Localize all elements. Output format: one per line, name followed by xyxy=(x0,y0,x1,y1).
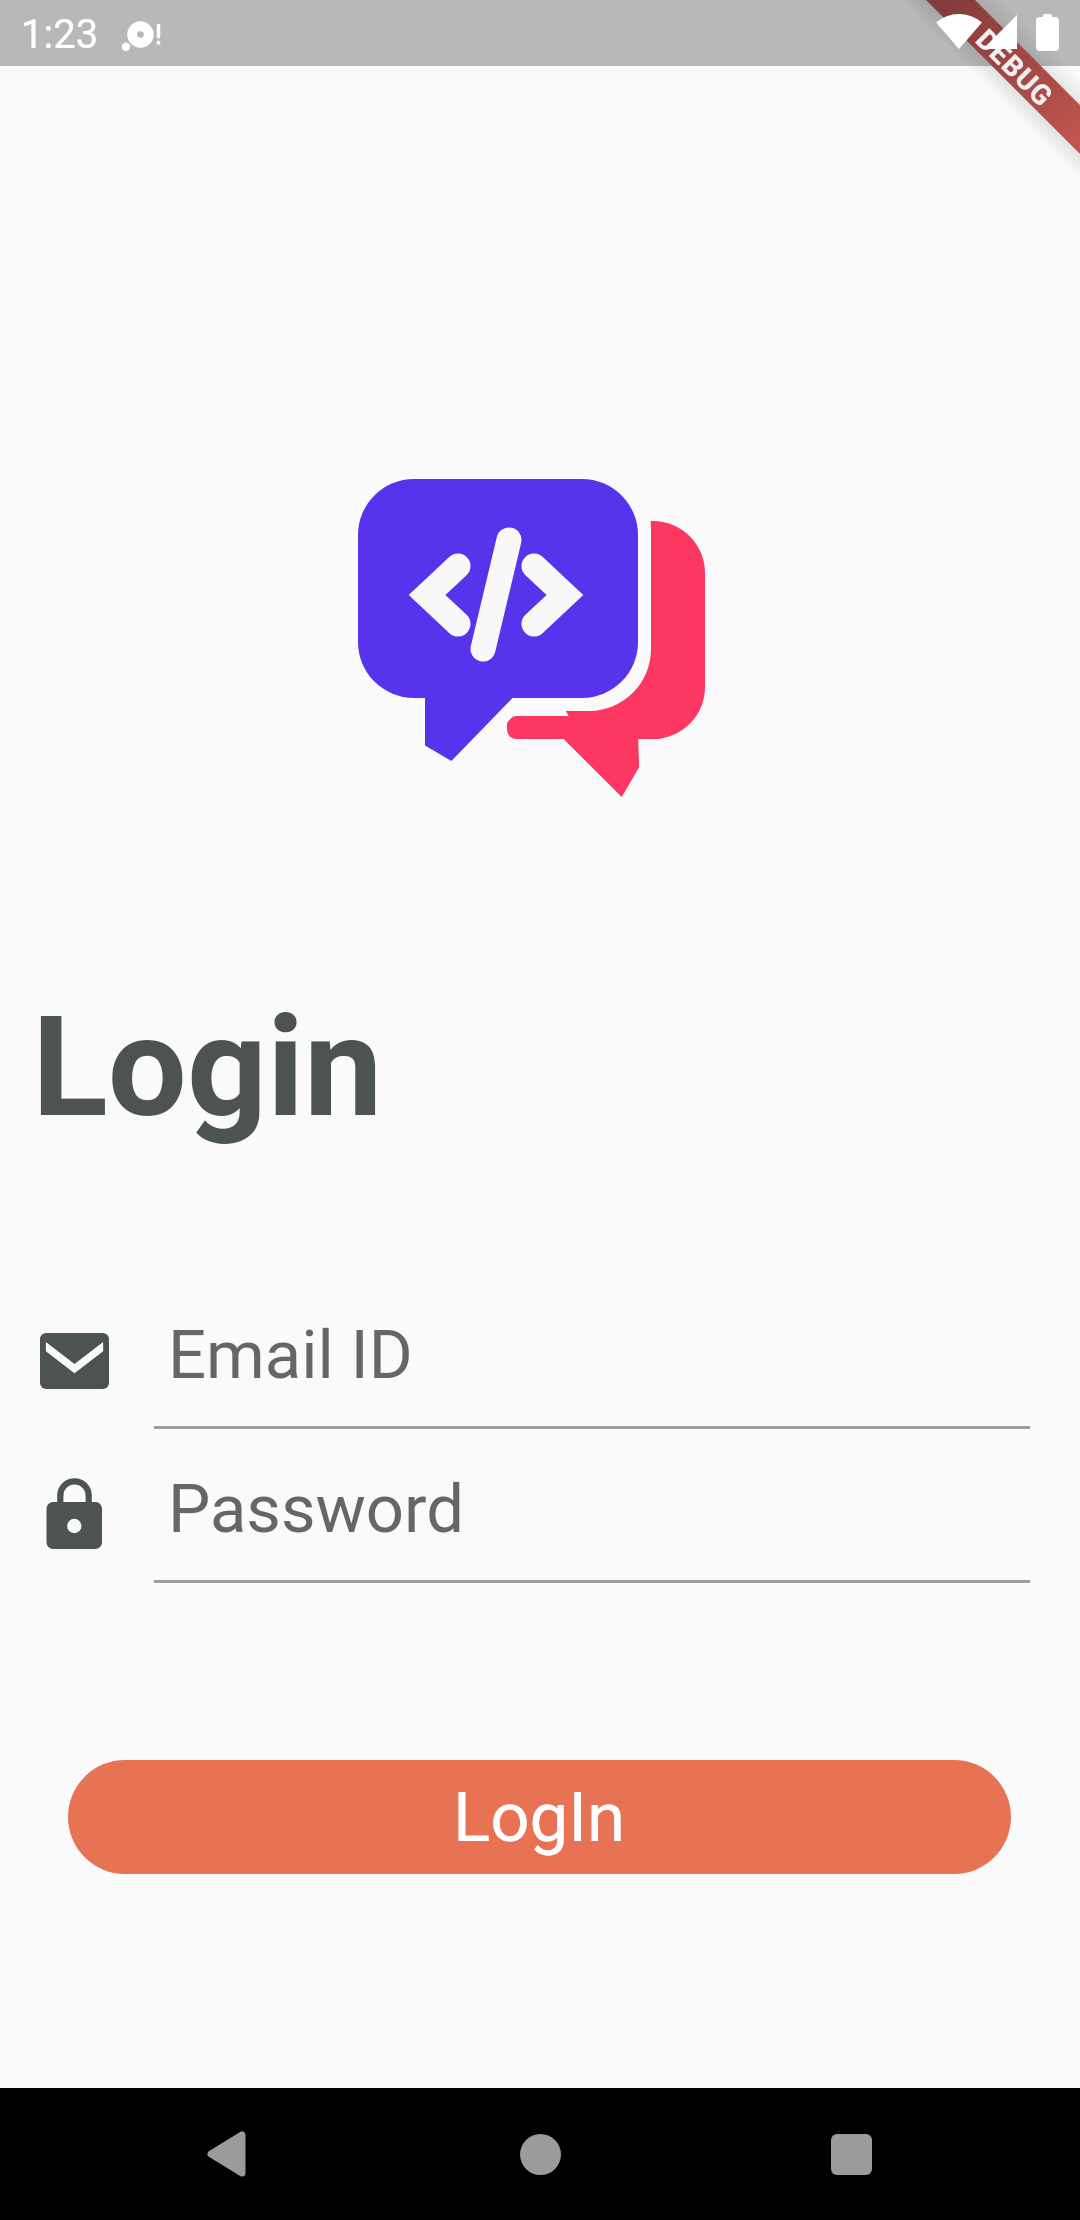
button[interactable]: Home xyxy=(494,2088,586,2220)
staticText: LogIn xyxy=(453,1777,626,1858)
staticText: DEBUG xyxy=(969,23,1060,114)
staticText: Password xyxy=(168,1470,464,1549)
button[interactable]: Email ID xyxy=(30,1300,1040,1430)
staticText: Email ID xyxy=(168,1316,413,1395)
staticText: Login xyxy=(32,985,383,1149)
button[interactable]: Password xyxy=(30,1455,1040,1585)
button[interactable]: Back xyxy=(180,2088,272,2220)
button[interactable]: Recent apps xyxy=(805,2088,897,2220)
button[interactable]: LogIn xyxy=(68,1760,1011,1874)
staticText: 1:23 xyxy=(21,11,99,58)
